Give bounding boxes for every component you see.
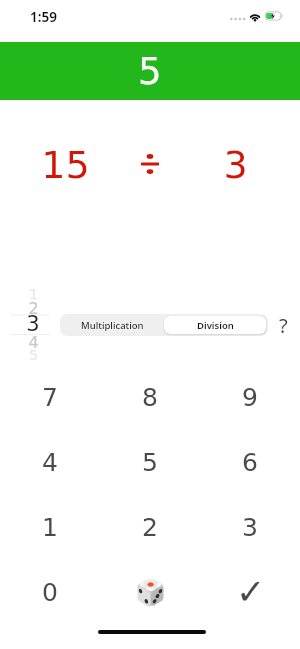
staticText: 3 xyxy=(26,312,40,336)
staticText: 15 xyxy=(41,143,90,187)
staticText: Multiplication xyxy=(81,319,144,332)
staticText: 4 xyxy=(42,448,58,477)
button[interactable]: Help xyxy=(271,312,296,337)
staticText: 6 xyxy=(242,448,258,477)
button[interactable]: 5 xyxy=(100,430,200,495)
button[interactable]: 7 xyxy=(0,365,100,430)
staticText: 5 xyxy=(142,448,158,477)
staticText: 1 xyxy=(42,513,58,542)
button[interactable]: New random problem xyxy=(100,560,200,625)
staticText: 0 xyxy=(42,578,58,607)
staticText: 1:59 xyxy=(30,8,57,26)
staticText: 1 xyxy=(29,286,38,302)
staticText: 3 xyxy=(242,513,258,542)
staticText: ✓ xyxy=(236,572,266,613)
button[interactable]: 0 xyxy=(0,560,100,625)
staticText: Division xyxy=(197,319,234,332)
staticText: ? xyxy=(279,312,288,337)
button[interactable]: 1 xyxy=(0,495,100,560)
button[interactable]: 9 xyxy=(200,365,300,430)
staticText: 5 xyxy=(138,50,162,93)
staticText: 4 xyxy=(28,333,39,352)
button[interactable]: 8 xyxy=(100,365,200,430)
button[interactable]: 2 xyxy=(100,495,200,560)
staticText: 3 xyxy=(223,143,248,187)
staticText: 🎲 xyxy=(135,578,167,607)
button[interactable]: 3 xyxy=(200,495,300,560)
staticText: 8 xyxy=(142,383,158,412)
staticText: 2 xyxy=(142,513,158,542)
staticText: 9 xyxy=(242,383,258,412)
button[interactable]: 4 xyxy=(0,430,100,495)
staticText: 7 xyxy=(42,383,58,412)
staticText: 5 xyxy=(29,347,38,363)
button[interactable]: 6 xyxy=(200,430,300,495)
button[interactable]: Multiplication xyxy=(60,314,164,336)
button[interactable]: Submit answer xyxy=(200,560,300,625)
staticText: 2 xyxy=(28,299,39,318)
button[interactable]: Division xyxy=(164,316,266,334)
